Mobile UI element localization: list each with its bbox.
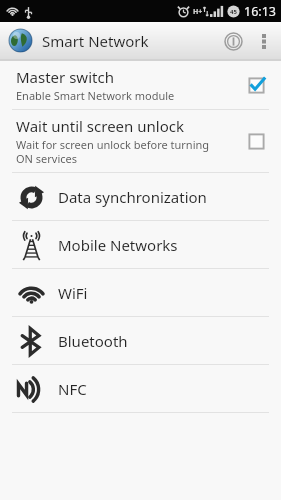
button[interactable]: WiFi	[0, 269, 281, 316]
button[interactable]: Wait until screen unlock	[0, 110, 281, 172]
staticText: Mobile Networks	[58, 235, 178, 255]
button[interactable]: More options	[250, 27, 278, 55]
staticText: Master switch	[16, 67, 114, 87]
button[interactable]: Bluetooth	[0, 317, 281, 364]
staticText: Bluetooth	[58, 331, 128, 351]
button[interactable]: NFC	[0, 365, 281, 412]
button[interactable]: Master switch	[0, 61, 281, 109]
staticText: 16:13	[244, 3, 276, 20]
button[interactable]: Toggle services	[216, 24, 250, 58]
staticText: Data synchronization	[58, 187, 207, 207]
staticText: 45	[230, 8, 237, 16]
staticText: WiFi	[58, 283, 88, 303]
button[interactable]: Data synchronization	[0, 173, 281, 220]
button[interactable]: Mobile Networks	[0, 221, 281, 268]
staticText: H+	[193, 7, 203, 17]
staticText: Smart Network	[42, 31, 149, 51]
staticText: Wait for screen unlock before turning ON…	[16, 137, 210, 166]
staticText: Wait until screen unlock	[16, 116, 184, 136]
staticText: Enable Smart Network module	[16, 88, 175, 103]
staticText: NFC	[58, 379, 87, 399]
